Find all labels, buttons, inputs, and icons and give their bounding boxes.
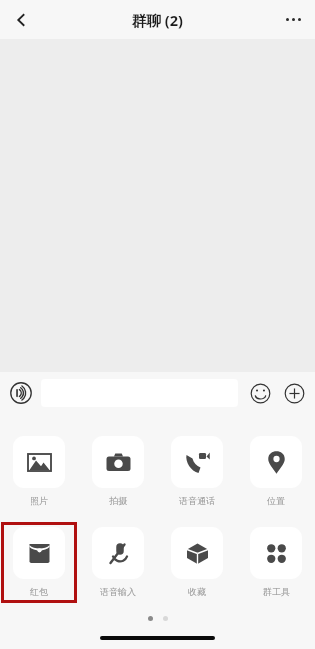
button[interactable]: More functions bbox=[278, 377, 310, 409]
staticText: 群聊 (2) bbox=[132, 10, 183, 30]
staticText: 群工具 bbox=[263, 586, 290, 597]
button[interactable]: More options bbox=[271, 0, 315, 39]
button[interactable]: 红包 bbox=[4, 525, 74, 600]
button[interactable]: 收藏 bbox=[162, 525, 232, 600]
button[interactable]: 拍摄 bbox=[83, 434, 153, 509]
staticText: 红包 bbox=[30, 586, 48, 597]
button[interactable]: 照片 bbox=[4, 434, 74, 509]
button[interactable]: 群工具 bbox=[241, 525, 311, 600]
staticText: 语音通话 bbox=[179, 495, 215, 506]
button[interactable]: Back bbox=[0, 0, 42, 39]
button[interactable]: 语音通话 bbox=[162, 434, 232, 509]
button[interactable]: 语音输入 bbox=[83, 525, 153, 600]
staticText: 拍摄 bbox=[109, 495, 127, 506]
button[interactable]: Voice input bbox=[5, 377, 37, 409]
staticText: 收藏 bbox=[188, 586, 206, 597]
staticText: 照片 bbox=[30, 495, 48, 506]
button[interactable]: 位置 bbox=[241, 434, 311, 509]
staticText: 语音输入 bbox=[100, 586, 136, 597]
staticText: 位置 bbox=[267, 495, 285, 506]
button[interactable]: Emoji bbox=[244, 377, 276, 409]
